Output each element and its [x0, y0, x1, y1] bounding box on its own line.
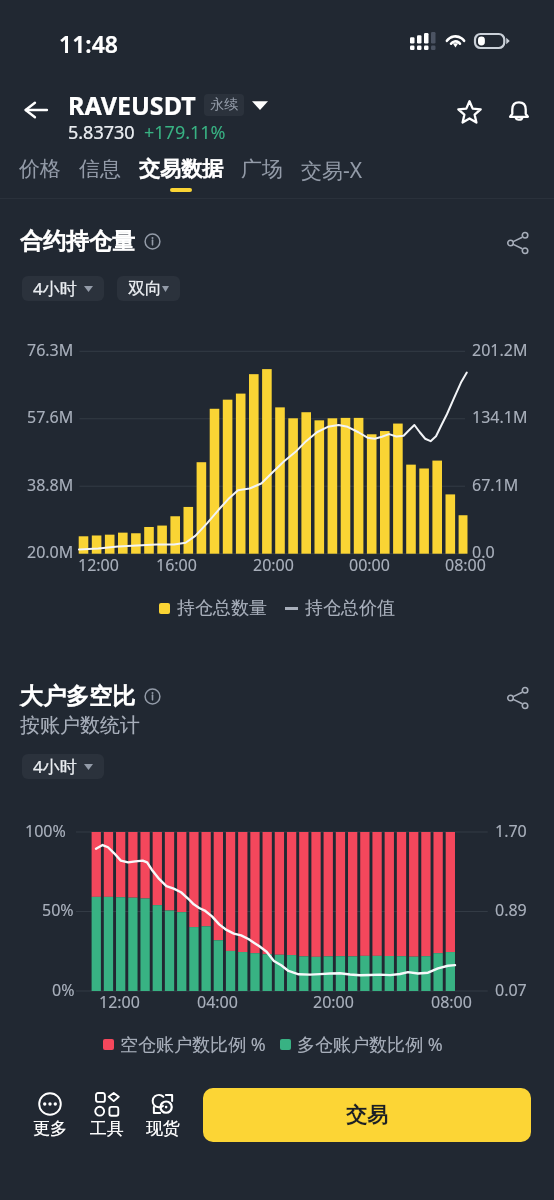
- staticText: 08:00: [445, 554, 486, 576]
- staticText: 100%: [25, 820, 66, 842]
- button[interactable]: Favorite: [447, 90, 491, 134]
- staticText: 1.70: [495, 820, 527, 842]
- staticText: 16:00: [156, 554, 197, 576]
- button[interactable]: Share: [500, 225, 536, 261]
- staticText: 广场: [241, 156, 283, 182]
- staticText: 4小时: [33, 755, 77, 778]
- staticText: 按账户数统计: [20, 713, 140, 738]
- staticText: 201.2M: [472, 339, 528, 361]
- staticText: 永续: [210, 96, 238, 114]
- staticText: 04:00: [197, 991, 238, 1013]
- staticText: 交易-X: [301, 156, 363, 185]
- staticText: 20:00: [313, 991, 354, 1013]
- staticText: 更多: [33, 1118, 67, 1139]
- button[interactable]: Back: [12, 86, 60, 134]
- staticText: 50%: [42, 899, 74, 921]
- staticText: 11:48: [59, 28, 118, 59]
- staticText: 4小时: [33, 277, 77, 300]
- button[interactable]: 工具: [79, 1092, 135, 1139]
- staticText: 交易数据: [139, 156, 223, 182]
- staticText: 00:00: [349, 554, 390, 576]
- staticText: 0.0: [472, 541, 495, 563]
- staticText: 12:00: [78, 554, 119, 576]
- staticText: 08:00: [431, 991, 472, 1013]
- staticText: 20.0M: [27, 541, 74, 563]
- button[interactable]: 4小时: [22, 276, 104, 301]
- staticText: 大户多空比: [20, 682, 135, 711]
- staticText: 价格: [19, 156, 61, 182]
- staticText: 合约持仓量: [20, 227, 135, 256]
- staticText: 交易: [346, 1102, 388, 1128]
- button[interactable]: 交易-X: [292, 152, 372, 199]
- staticText: 持仓总价值: [305, 597, 395, 620]
- button[interactable]: 价格: [10, 152, 70, 196]
- staticText: 12:00: [99, 991, 140, 1013]
- button[interactable]: 更多: [22, 1092, 78, 1139]
- staticText: 工具: [90, 1118, 124, 1139]
- button[interactable]: 广场: [232, 152, 292, 196]
- staticText: 38.8M: [27, 474, 74, 496]
- staticText: +179.11%: [144, 120, 226, 145]
- staticText: RAVEUSDT: [68, 88, 196, 122]
- staticText: 双向: [128, 278, 162, 299]
- staticText: 20:00: [253, 554, 294, 576]
- staticText: 0.89: [495, 899, 527, 921]
- staticText: 5.83730: [68, 120, 135, 145]
- staticText: 持仓总数量: [177, 597, 267, 620]
- button[interactable]: 双向: [117, 276, 180, 301]
- button[interactable]: 现货: [135, 1092, 191, 1139]
- staticText: 57.6M: [27, 406, 74, 428]
- button[interactable]: 交易: [203, 1088, 531, 1142]
- button[interactable]: 信息: [70, 152, 130, 196]
- staticText: 现货: [146, 1118, 180, 1139]
- staticText: 空仓账户数比例 %: [120, 1032, 266, 1057]
- staticText: 76.3M: [27, 339, 74, 361]
- button[interactable]: 交易数据: [130, 152, 232, 196]
- staticText: 多仓账户数比例 %: [297, 1032, 443, 1057]
- staticText: 0%: [52, 979, 75, 1001]
- staticText: 134.1M: [472, 406, 528, 428]
- button[interactable]: Notifications: [497, 90, 541, 134]
- button[interactable]: 4小时: [22, 754, 104, 779]
- staticText: 信息: [79, 156, 121, 182]
- staticText: 0.07: [495, 979, 527, 1001]
- button[interactable]: Share: [500, 680, 536, 716]
- staticText: 67.1M: [472, 474, 519, 496]
